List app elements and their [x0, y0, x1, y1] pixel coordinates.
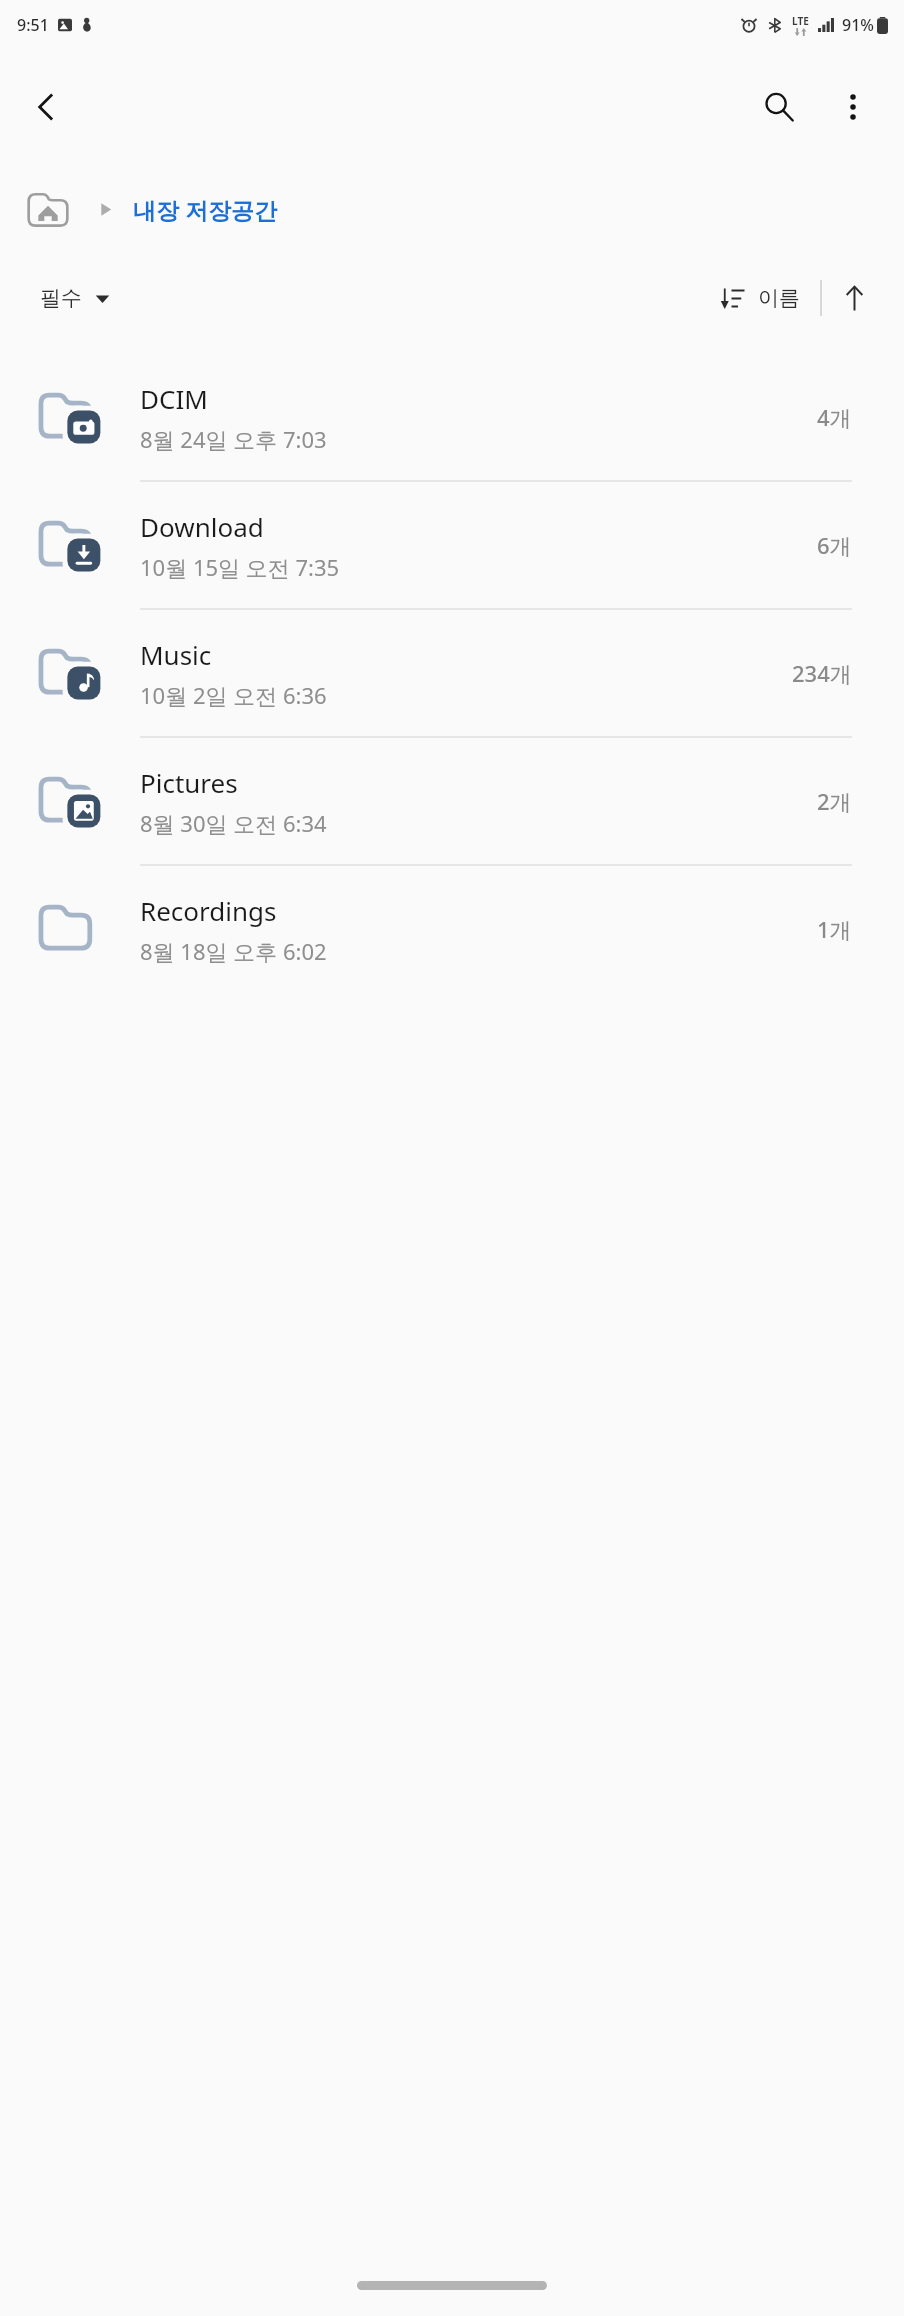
staticText: 2개 [817, 786, 852, 816]
staticText: 10월 15일 오전 7:35 [140, 552, 340, 582]
staticText: LTE [792, 14, 809, 28]
staticText: Pictures [140, 765, 238, 800]
staticText: 10월 2일 오전 6:36 [140, 680, 327, 710]
staticText: 9:51 [17, 14, 49, 36]
button[interactable]: Search [742, 70, 816, 144]
button[interactable]: Download [0, 482, 904, 610]
staticText: 91% [842, 14, 874, 36]
button[interactable]: Sort ascending [822, 266, 886, 330]
button[interactable]: 이름 [714, 277, 806, 319]
staticText: 234개 [792, 658, 852, 688]
staticText: 8월 18일 오후 6:02 [140, 936, 327, 966]
staticText: 1개 [817, 914, 852, 944]
staticText: 이름 [758, 285, 800, 311]
button[interactable]: Home folder [16, 177, 80, 241]
staticText: Recordings [140, 893, 277, 928]
button[interactable]: Pictures [0, 738, 904, 866]
staticText: DCIM [140, 381, 208, 416]
staticText: 내장 저장공간 [133, 194, 277, 225]
staticText: 6개 [817, 530, 852, 560]
staticText: 8월 24일 오후 7:03 [140, 424, 327, 454]
staticText: Download [140, 509, 264, 544]
button[interactable]: Back [10, 70, 84, 144]
staticText: 4개 [817, 402, 852, 432]
button[interactable]: Recordings [0, 866, 904, 992]
staticText: 필수 [40, 285, 82, 311]
staticText: 8월 30일 오전 6:34 [140, 808, 327, 838]
button[interactable]: 필수 [34, 277, 116, 319]
staticText: Music [140, 637, 212, 672]
button[interactable]: Music [0, 610, 904, 738]
button[interactable]: 내장 저장공간 [131, 188, 279, 231]
button[interactable]: More options [816, 70, 890, 144]
button[interactable]: DCIM [0, 354, 904, 482]
